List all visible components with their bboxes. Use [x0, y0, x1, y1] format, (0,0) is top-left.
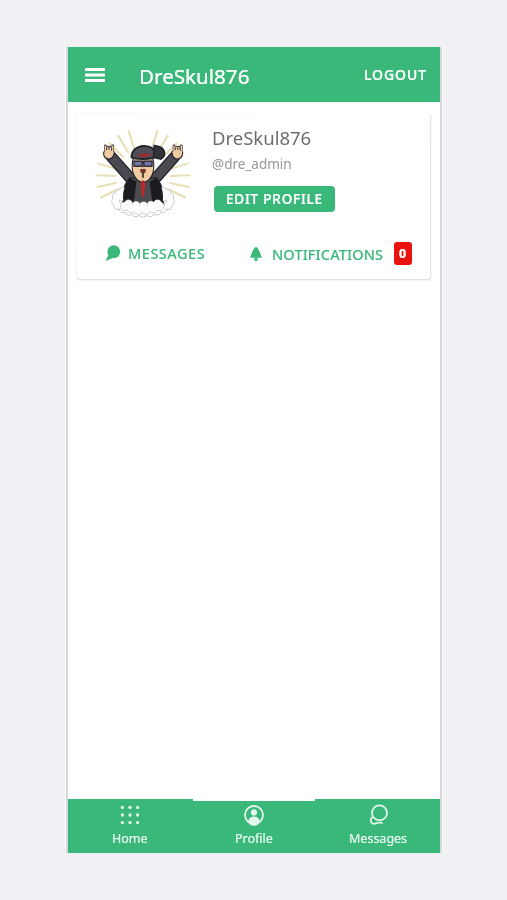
button[interactable]: LOGOUT — [355, 58, 436, 91]
staticText: LOGOUT — [364, 65, 427, 84]
button[interactable]: EDIT PROFILE — [214, 186, 335, 212]
button[interactable]: Menu — [76, 56, 114, 94]
staticText: 0 — [399, 245, 407, 262]
staticText: Messages — [349, 830, 408, 847]
staticText: @dre_admin — [212, 155, 292, 173]
staticText: Profile — [235, 830, 273, 847]
button[interactable]: Messages — [316, 799, 440, 853]
staticText: NOTIFICATIONS — [272, 244, 384, 264]
staticText: MESSAGES — [128, 243, 206, 263]
button[interactable]: NOTIFICATIONS — [248, 242, 412, 265]
staticText: Home — [112, 830, 148, 847]
staticText: DreSkul876 — [212, 125, 312, 150]
staticText: EDIT PROFILE — [226, 190, 323, 208]
button[interactable]: Profile — [192, 799, 316, 853]
staticText: DreSkul876 — [139, 62, 250, 90]
button[interactable]: Home — [68, 799, 192, 853]
button[interactable]: MESSAGES — [105, 243, 206, 263]
